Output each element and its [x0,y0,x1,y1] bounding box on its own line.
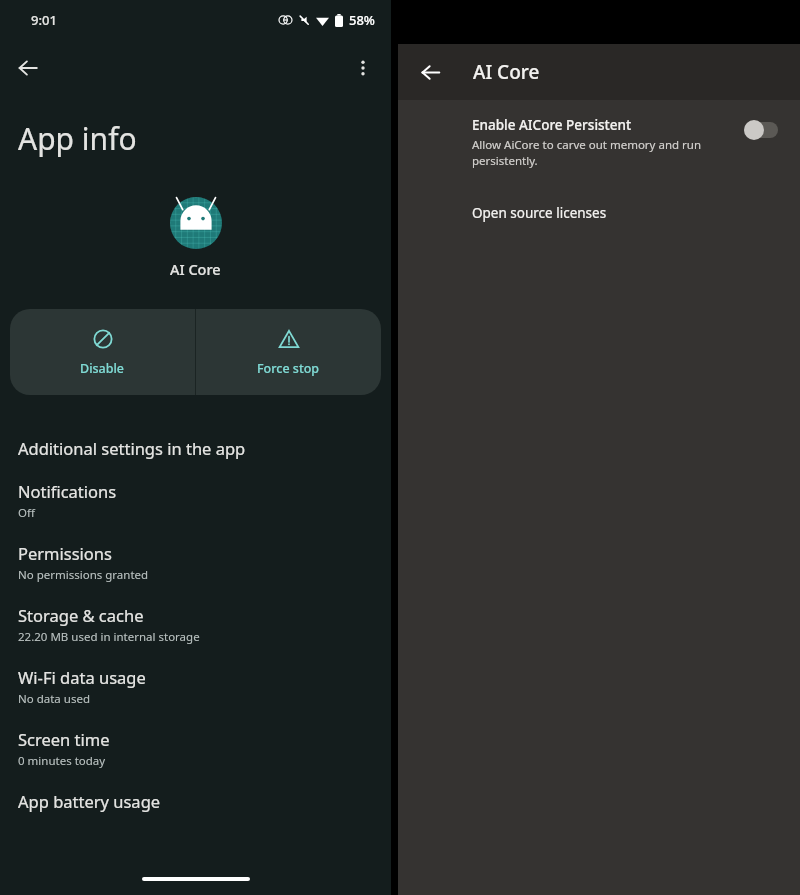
button[interactable]: App battery usage [0,780,391,823]
staticText: Enable AICore Persistent [472,116,632,134]
button[interactable]: Permissions [0,532,391,594]
button[interactable]: More options [341,46,385,90]
staticText: Disable [80,360,125,377]
staticText: Open source licenses [472,204,607,222]
button[interactable]: Notifications [0,470,391,532]
staticText: 0 minutes today [18,753,106,769]
staticText: No data used [18,691,90,707]
staticText: Permissions [18,542,112,564]
staticText: Screen time [18,728,110,750]
button[interactable]: Wi-Fi data usage [0,656,391,718]
button[interactable]: Force stop [196,309,381,395]
staticText: Storage & cache [18,604,144,626]
staticText: App info [18,118,137,159]
button[interactable]: Back [6,46,50,90]
staticText: 22.20 MB used in internal storage [18,629,200,645]
button[interactable]: Storage & cache [0,594,391,656]
staticText: 9:01 [31,11,57,29]
staticText: Wi-Fi data usage [18,666,146,688]
button[interactable]: Disable [10,309,195,395]
staticText: 58% [349,11,375,29]
button[interactable]: Enable AICore Persistent [398,116,800,168]
staticText: App battery usage [18,790,161,812]
button[interactable]: Open source licenses [398,198,800,228]
staticText: Notifications [18,480,117,502]
button[interactable]: Additional settings in the app [0,427,391,470]
staticText: AI Core [473,59,540,85]
staticText: AI Core [170,259,221,279]
staticText: Allow AiCore to carve out memory and run… [472,137,702,168]
staticText: Off [18,505,35,521]
button[interactable]: Back [410,52,450,92]
staticText: Force stop [257,360,320,377]
button[interactable]: Screen time [0,718,391,780]
staticText: Additional settings in the app [18,437,246,459]
staticText: No permissions granted [18,567,149,583]
